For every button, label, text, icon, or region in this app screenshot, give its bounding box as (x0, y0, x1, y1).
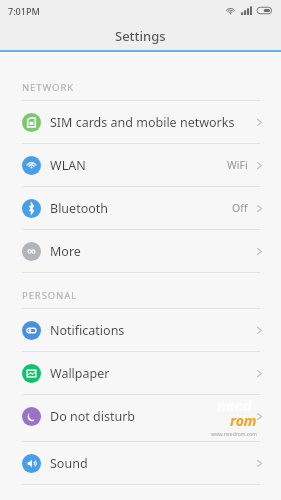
staticText: SIM cards and mobile networks (50, 114, 235, 131)
button[interactable]: SIM cards and mobile networks (0, 101, 281, 143)
staticText: Off (232, 201, 248, 215)
button[interactable]: WLAN (0, 144, 281, 186)
staticText: Bluetooth (50, 200, 109, 217)
button[interactable]: Notifications (0, 309, 281, 351)
staticText: Settings (115, 27, 166, 45)
staticText: WLAN (50, 157, 86, 174)
button[interactable]: Sound (0, 442, 281, 484)
staticText: Wallpaper (50, 365, 110, 382)
staticText: 7:01PM (8, 5, 40, 17)
button[interactable]: Wallpaper (0, 352, 281, 394)
staticText: Sound (50, 455, 88, 472)
button[interactable]: Bluetooth (0, 187, 281, 229)
staticText: www.needrom.com (211, 431, 257, 438)
button[interactable]: More (0, 230, 281, 272)
staticText: More (50, 243, 81, 260)
staticText: Do not disturb (50, 408, 135, 425)
staticText: WiFi (227, 158, 248, 172)
staticText: Notifications (50, 322, 125, 339)
staticText: NETWORK (22, 81, 75, 94)
staticText: need (217, 395, 252, 415)
staticText: rom (230, 411, 257, 430)
staticText: PERSONAL (22, 289, 78, 302)
button[interactable]: Do not disturb (0, 395, 281, 437)
